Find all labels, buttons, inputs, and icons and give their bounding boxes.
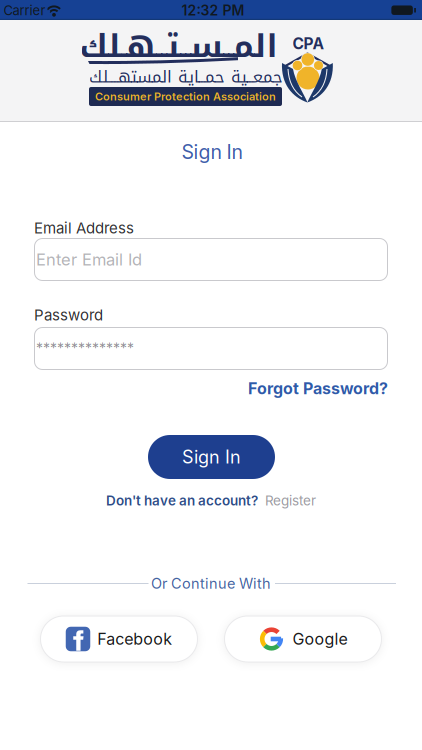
button[interactable]: **************	[34, 327, 388, 370]
staticText: Sign In	[182, 446, 241, 468]
staticText: جمعــية حمــاية المستهـــلك	[88, 61, 282, 93]
staticText: Or Continue With	[151, 575, 271, 592]
button[interactable]: Register	[265, 492, 316, 509]
staticText: **************	[36, 340, 134, 357]
button[interactable]: Facebook	[40, 615, 198, 662]
staticText: 12:32 PM	[181, 2, 244, 19]
staticText: Consumer Protection Association	[95, 90, 276, 103]
button[interactable]: Forgot Password?	[248, 379, 388, 398]
staticText: Forgot Password?	[248, 379, 388, 398]
staticText: المــســتــهـلك	[79, 16, 277, 77]
staticText: Google	[292, 629, 347, 649]
staticText: Register	[265, 492, 316, 509]
staticText: Carrier	[3, 3, 45, 18]
staticText: CPA	[292, 34, 324, 53]
staticText: Sign In	[181, 140, 242, 164]
button[interactable]: Sign In	[148, 435, 275, 479]
staticText: Don't have an account?	[106, 492, 258, 509]
button[interactable]: Enter Email Id	[34, 238, 388, 281]
button[interactable]: Google	[224, 615, 382, 662]
staticText: Facebook	[97, 629, 172, 649]
staticText: Enter Email Id	[36, 249, 142, 269]
staticText: Password	[34, 306, 103, 324]
staticText: Email Address	[34, 219, 134, 237]
